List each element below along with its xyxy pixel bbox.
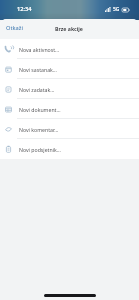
staticText: Novi dokument… [19, 106, 61, 113]
staticText: Nova aktivnost… [19, 46, 60, 53]
staticText: Brze akcije [55, 25, 83, 32]
button[interactable]: Novi dokument… [0, 99, 139, 119]
button[interactable]: Novi podsjetnik… [0, 139, 139, 159]
button[interactable]: Novi zadatak… [0, 79, 139, 99]
staticText: Novi komentar… [19, 126, 59, 133]
staticText: Novi zadatak… [19, 86, 55, 93]
staticText: 5G [113, 6, 120, 13]
staticText: 12:34 [17, 5, 32, 13]
staticText: Otkaži [6, 24, 23, 32]
button[interactable]: Novi komentar… [0, 119, 139, 139]
button[interactable]: Otkaži [0, 20, 29, 36]
button[interactable]: Nova aktivnost… [0, 39, 139, 59]
button[interactable]: Novi sastanak… [0, 59, 139, 79]
staticText: Novi podsjetnik… [19, 146, 61, 153]
staticText: Novi sastanak… [19, 66, 57, 73]
